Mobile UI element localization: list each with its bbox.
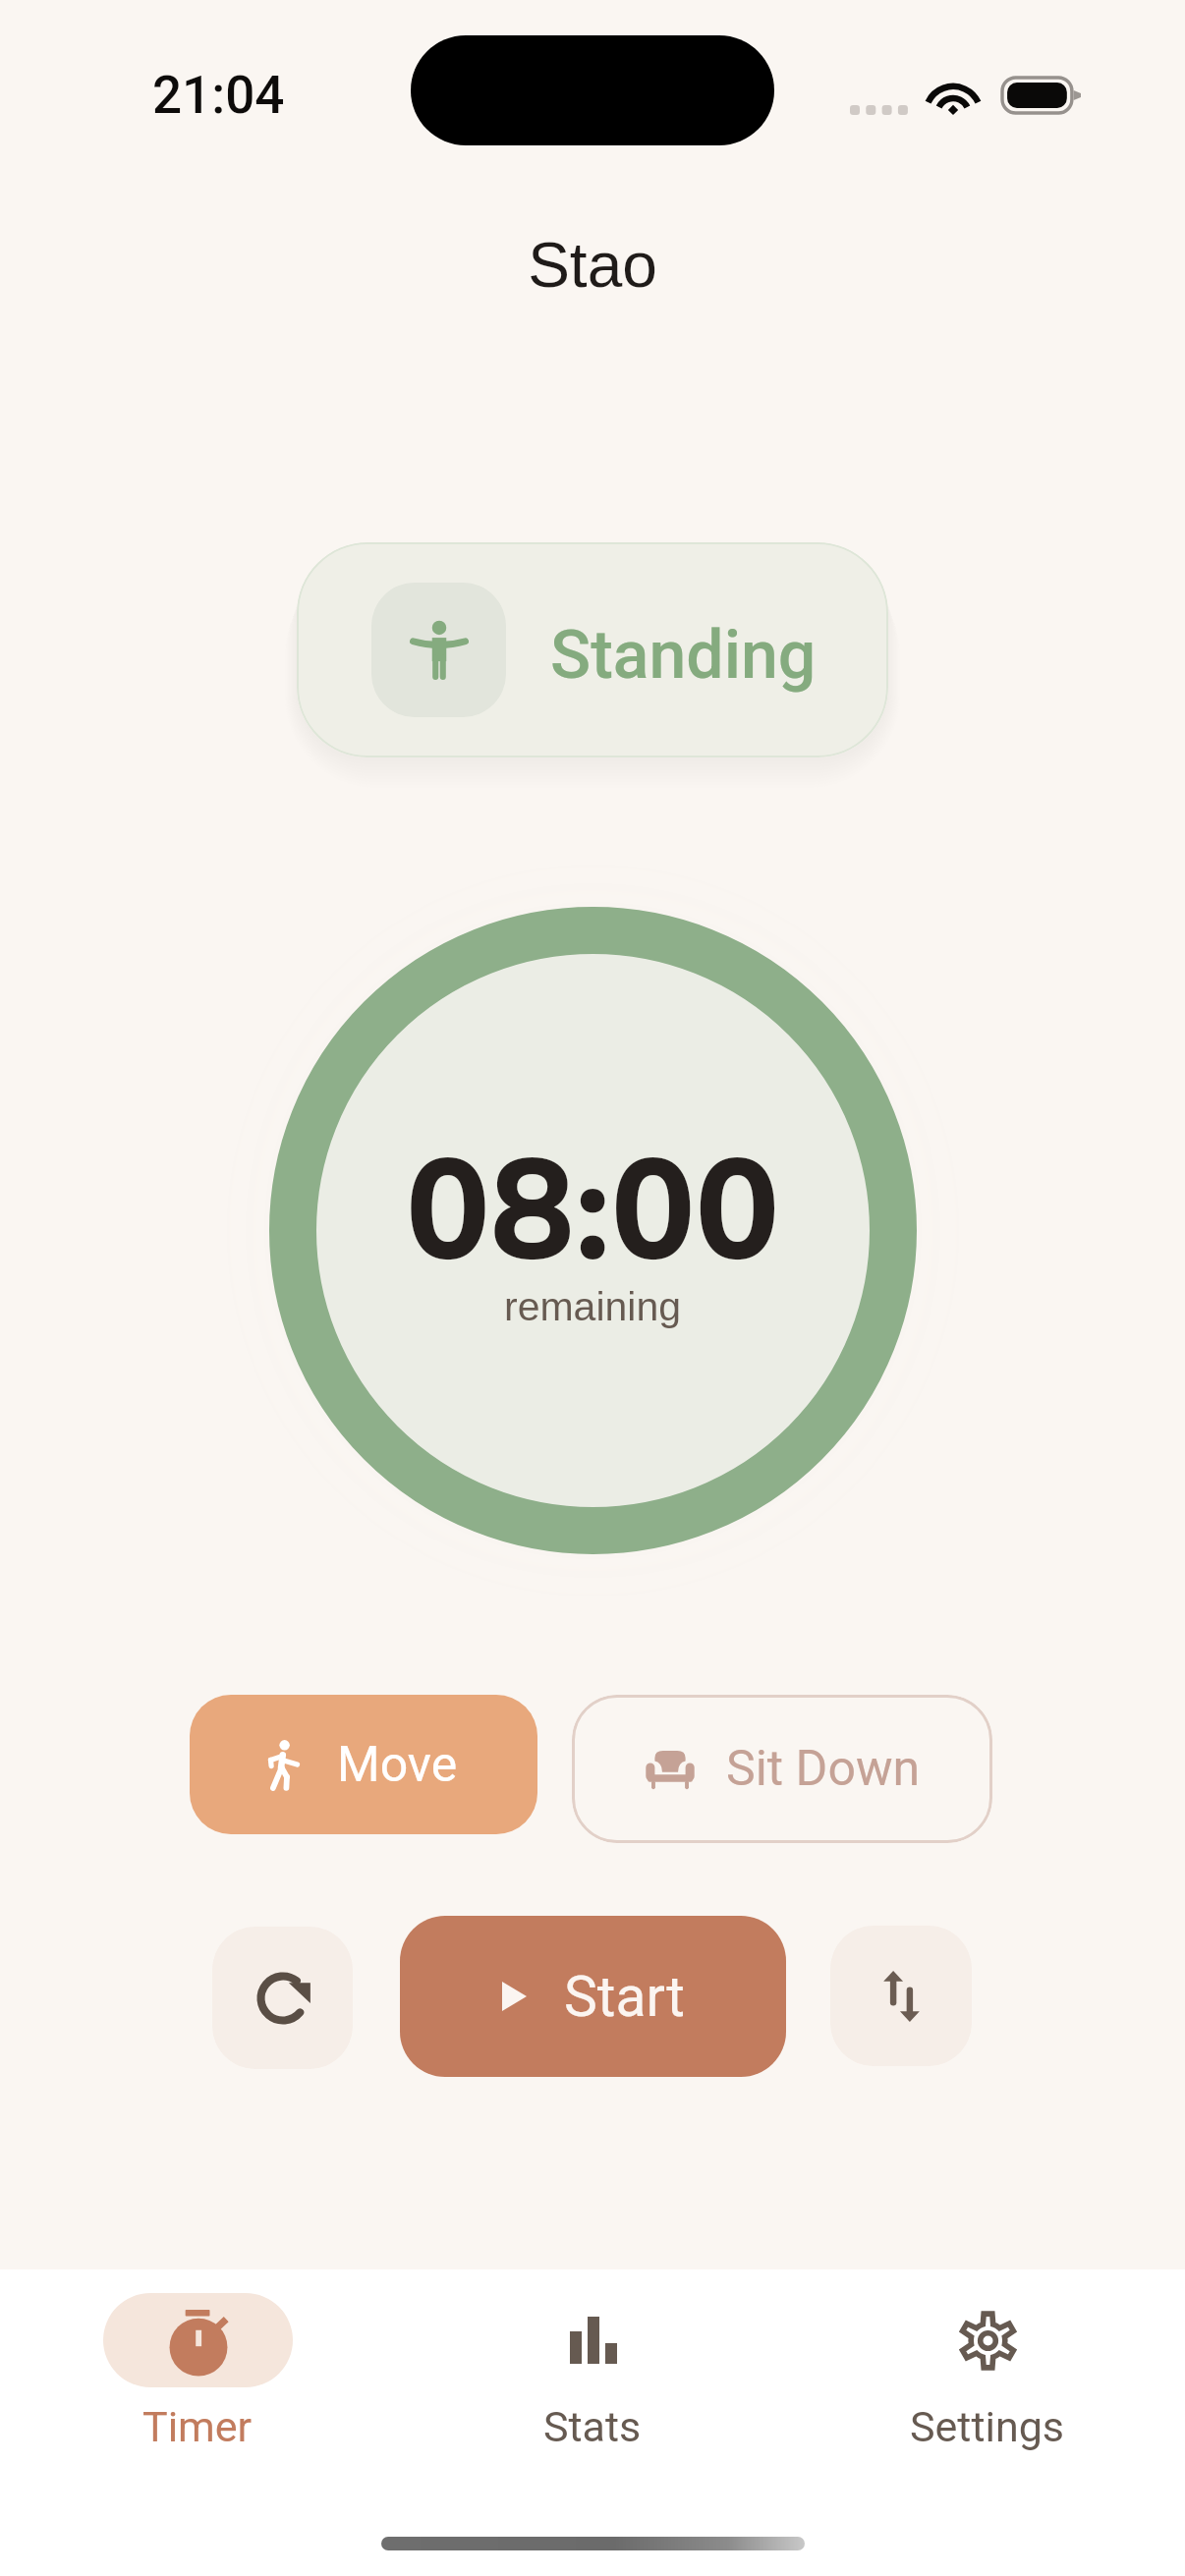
button[interactable]: Move <box>190 1695 537 1834</box>
staticText: Stao <box>528 230 657 301</box>
staticText: 21:04 <box>152 65 285 126</box>
button[interactable]: Standing <box>297 542 888 757</box>
staticText: Sit Down <box>726 1740 921 1798</box>
button[interactable]: Reset timer <box>212 1927 353 2069</box>
staticText: Move <box>337 1736 458 1794</box>
button[interactable]: Timer <box>0 2269 395 2513</box>
staticText: Settings <box>910 2402 1065 2451</box>
button[interactable]: Stats <box>395 2269 790 2513</box>
staticText: 08:00 <box>406 1116 780 1308</box>
staticText: Stats <box>543 2402 642 2451</box>
button[interactable]: Start <box>400 1916 786 2077</box>
button[interactable]: Sit Down <box>572 1695 992 1843</box>
staticText: Start <box>564 1964 685 2030</box>
button[interactable]: Swap sit and stand <box>830 1926 972 2066</box>
staticText: Standing <box>550 616 817 695</box>
button[interactable]: Settings <box>790 2269 1185 2513</box>
staticText: Timer <box>142 2402 253 2451</box>
staticText: remaining <box>504 1284 682 1329</box>
